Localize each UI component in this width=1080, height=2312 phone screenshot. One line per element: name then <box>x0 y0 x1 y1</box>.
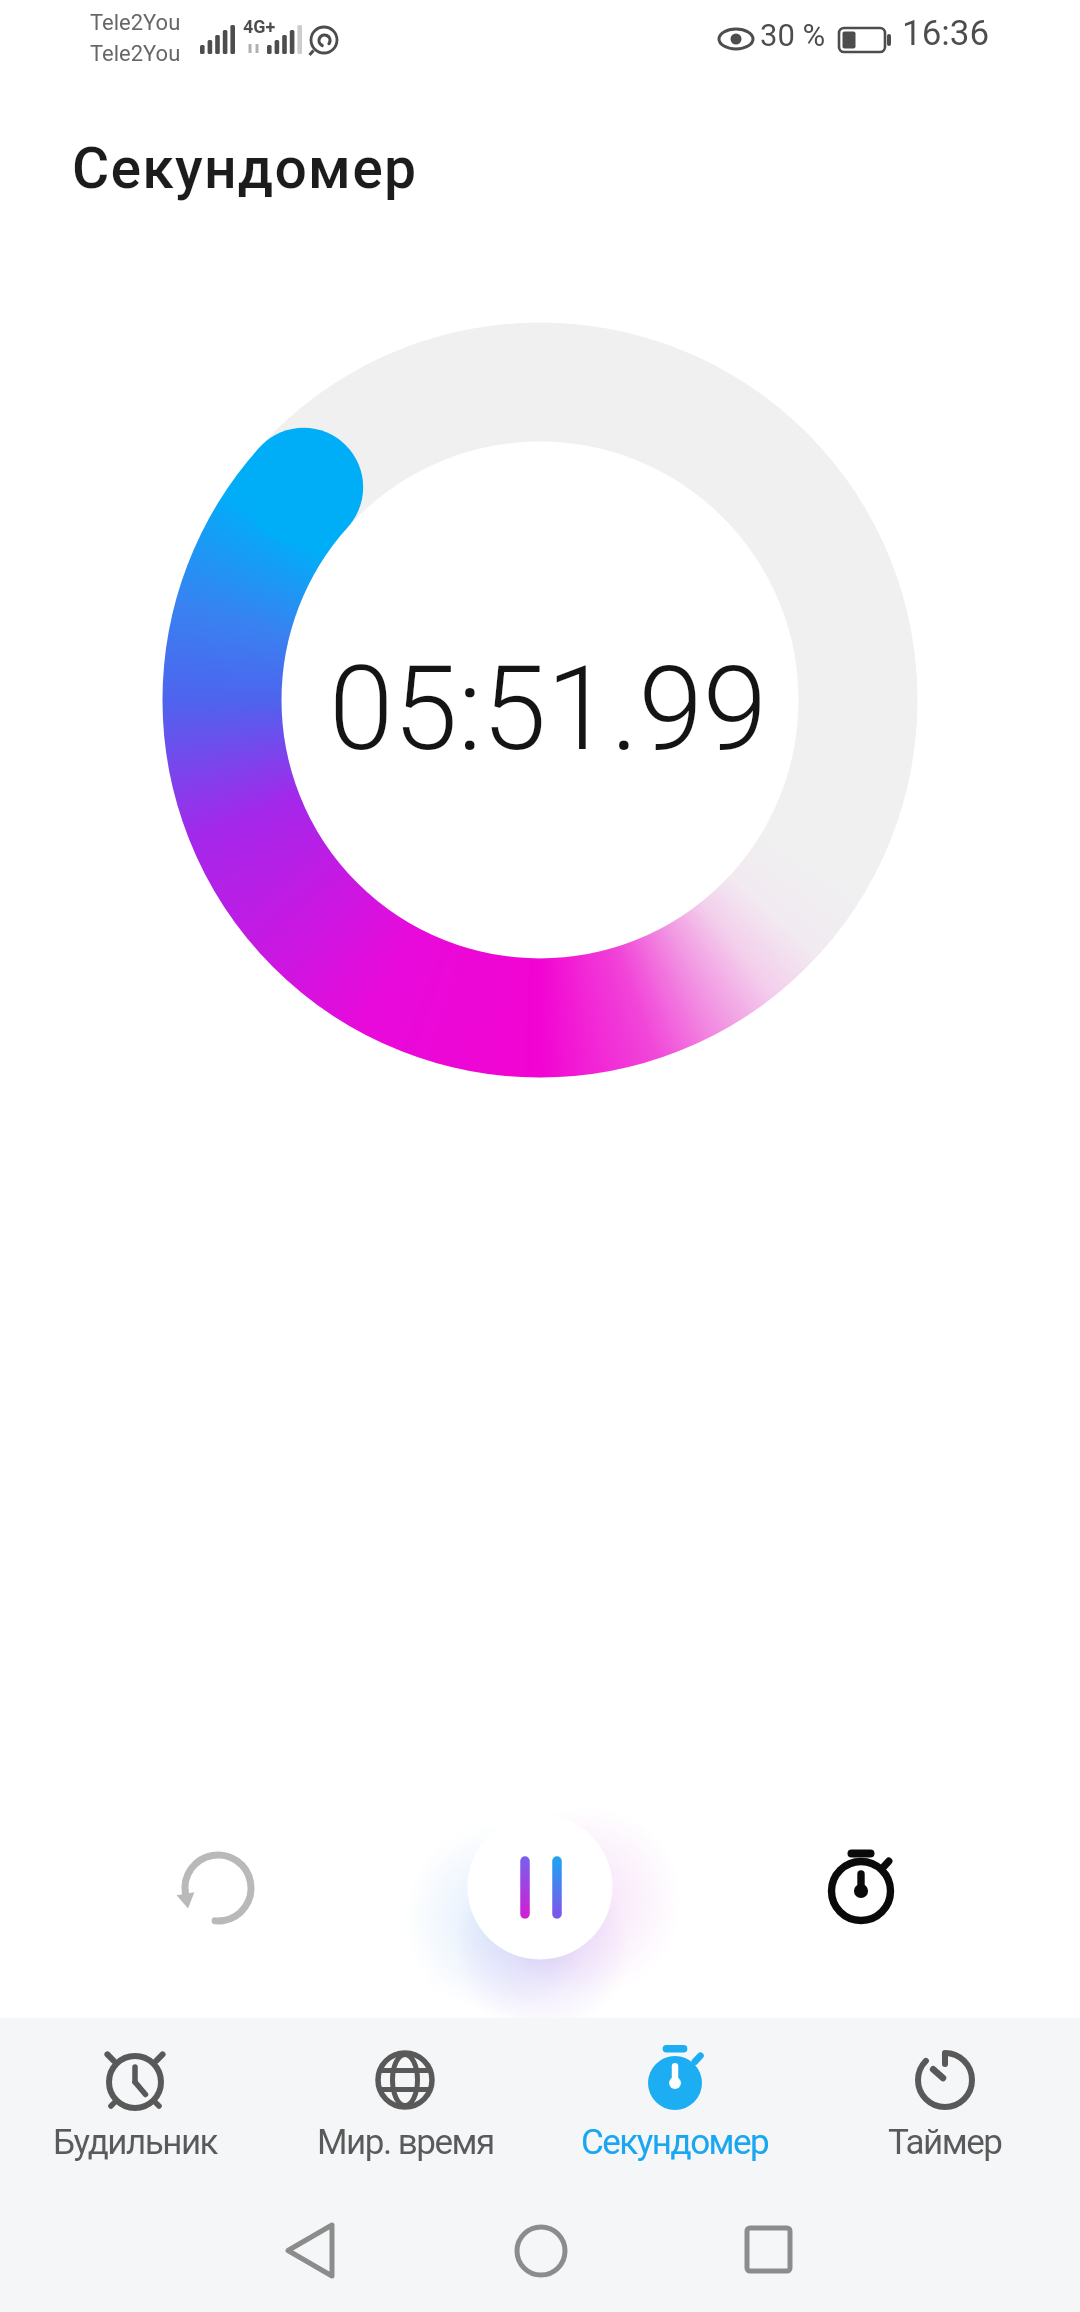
staticText: Таймер <box>888 2122 1002 2163</box>
staticText: Секундомер <box>72 135 418 202</box>
button[interactable]: Будильник <box>0 2018 270 2188</box>
staticText: Мир. время <box>317 2122 494 2163</box>
staticText: Секундомер <box>581 2122 769 2163</box>
button[interactable] <box>801 1831 921 1951</box>
button[interactable] <box>260 2205 360 2295</box>
button[interactable] <box>420 1767 660 2007</box>
staticText: 05:51.99 <box>329 641 768 777</box>
button[interactable] <box>718 2205 818 2295</box>
staticText: 16:36 <box>902 13 990 54</box>
button[interactable] <box>158 1828 278 1948</box>
staticText: 30 % <box>760 17 826 53</box>
staticText: Будильник <box>53 2122 218 2163</box>
staticText: 4G+ <box>243 16 276 37</box>
staticText: Tele2You <box>90 10 181 36</box>
staticText: Tele2You <box>90 41 181 67</box>
button[interactable]: Мир. время <box>270 2018 540 2188</box>
button[interactable]: Секундомер <box>540 2018 810 2188</box>
button[interactable] <box>491 2205 591 2295</box>
button[interactable]: Таймер <box>810 2018 1080 2188</box>
